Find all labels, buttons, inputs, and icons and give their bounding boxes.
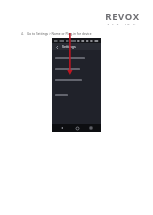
button[interactable]: Recent apps	[87, 124, 95, 132]
staticText: REVOX	[105, 10, 140, 23]
staticText: Go to Settings > Name or Plug-in for dev…	[27, 32, 92, 36]
button[interactable]	[52, 91, 101, 102]
staticText: 4.	[21, 32, 24, 36]
staticText: Settings	[62, 44, 76, 49]
button[interactable]: Home	[73, 124, 81, 132]
button[interactable]	[52, 76, 101, 87]
button[interactable]	[52, 54, 101, 65]
button[interactable]: Back	[58, 124, 66, 132]
button[interactable]	[52, 65, 101, 76]
staticText: Audio. Sound. Quality.	[107, 24, 138, 25]
button[interactable]: Back	[54, 44, 60, 50]
